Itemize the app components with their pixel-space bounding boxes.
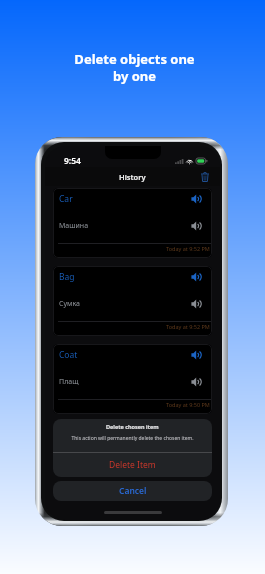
staticText: This action will permanently delete the … [71, 435, 194, 442]
staticText: Delete chosen item [106, 423, 159, 431]
staticText: Плащ [59, 377, 79, 387]
staticText: Coat [59, 349, 78, 361]
staticText: Car [59, 193, 73, 205]
staticText: Машина [59, 221, 89, 231]
staticText: Today at 9:52 PM [166, 245, 210, 252]
staticText: Cancel [119, 485, 147, 497]
button[interactable]: Cancel [53, 481, 212, 501]
staticText: Today at 9:50 PM [166, 401, 210, 408]
staticText: Delete Item [109, 459, 156, 471]
button[interactable]: Coat [53, 344, 212, 414]
staticText: Сумка [59, 299, 80, 309]
staticText: Bag [59, 271, 75, 283]
button[interactable]: Bag [53, 266, 212, 336]
staticText: Delete objects one by one [2, 50, 265, 85]
staticText: Today at 9:52 PM [166, 323, 210, 330]
button[interactable]: Delete Item [53, 453, 212, 477]
button[interactable]: Delete all history [198, 170, 212, 184]
button[interactable]: Car [53, 188, 212, 258]
staticText: History [119, 172, 146, 182]
staticText: 9:54 [64, 155, 81, 167]
